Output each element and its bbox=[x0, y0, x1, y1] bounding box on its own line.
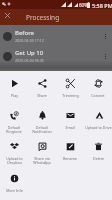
button[interactable]: Trimming bbox=[56, 73, 84, 103]
button[interactable]: Upload to Dropbox bbox=[0, 136, 28, 166]
staticText: More Info bbox=[6, 188, 23, 193]
button[interactable]: Share via WhatsApp bbox=[28, 136, 56, 166]
button[interactable]: Email bbox=[56, 105, 84, 135]
button[interactable]: Delete bbox=[84, 136, 112, 166]
button[interactable]: Close bbox=[1, 9, 13, 21]
staticText: Play bbox=[11, 93, 18, 98]
staticText: 5:58 PM bbox=[92, 2, 112, 9]
button[interactable]: Before bbox=[0, 26, 112, 46]
button[interactable]: Default Notification bbox=[28, 105, 56, 135]
staticText: Convert bbox=[91, 93, 105, 98]
staticText: Delete bbox=[93, 156, 104, 161]
button[interactable]: Rename bbox=[56, 136, 84, 166]
staticText: Share via WhatsApp bbox=[33, 156, 51, 166]
staticText: Default Notification bbox=[32, 125, 52, 135]
staticText: Email bbox=[65, 125, 75, 130]
staticText: 60% bbox=[79, 2, 88, 8]
staticText: 2020-06-03 18:02 bbox=[15, 78, 44, 83]
button[interactable]: Play bbox=[0, 73, 28, 103]
staticText: Get Up 10 bbox=[15, 49, 44, 57]
button[interactable]: Upload to Drive bbox=[84, 105, 112, 135]
staticText: Rename bbox=[63, 156, 77, 161]
button[interactable]: 2020-06-03 bbox=[0, 66, 112, 86]
button[interactable]: Share bbox=[28, 73, 56, 103]
staticText: Upload to Dropbox bbox=[6, 156, 23, 166]
button[interactable]: More options bbox=[98, 49, 112, 63]
staticText: 2020-06-05 17:12 bbox=[15, 38, 44, 43]
staticText: 2020-06-03 bbox=[15, 69, 47, 77]
staticText: 2020-06-04 06:45 bbox=[15, 58, 44, 63]
button[interactable]: More options bbox=[98, 29, 112, 43]
staticText: Before bbox=[15, 29, 35, 37]
button[interactable]: Convert bbox=[84, 73, 112, 103]
staticText: Trimming bbox=[62, 93, 79, 98]
button[interactable]: Default Ringtone bbox=[0, 105, 28, 135]
button[interactable]: More Info bbox=[0, 168, 28, 198]
staticText: Processing bbox=[26, 13, 60, 22]
staticText: Upload to Drive bbox=[85, 125, 112, 130]
button[interactable]: More options bbox=[98, 69, 112, 83]
staticText: Share bbox=[37, 93, 47, 98]
button[interactable]: Get Up 10 bbox=[0, 46, 112, 66]
staticText: Default Ringtone bbox=[6, 125, 22, 135]
